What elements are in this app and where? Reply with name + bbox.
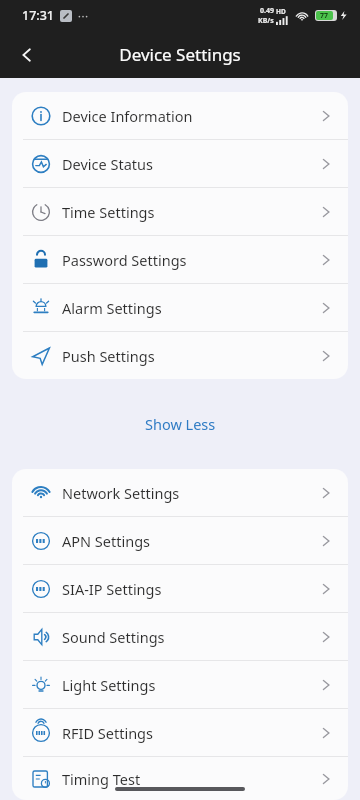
button[interactable]: RFID Settings bbox=[12, 709, 348, 756]
button[interactable]: Password Settings bbox=[12, 236, 348, 283]
staticText: Device Status bbox=[62, 154, 318, 174]
staticText: 77 bbox=[320, 11, 329, 20]
staticText: 17:31 bbox=[22, 7, 55, 24]
button[interactable]: Network Settings bbox=[12, 469, 348, 516]
button[interactable]: APN Settings bbox=[12, 517, 348, 564]
staticText: Light Settings bbox=[62, 675, 318, 695]
button[interactable]: Device Information bbox=[12, 92, 348, 139]
staticText: Password Settings bbox=[62, 250, 318, 270]
staticText: Show Less bbox=[145, 414, 216, 434]
button[interactable]: Time Settings bbox=[12, 188, 348, 235]
staticText: Alarm Settings bbox=[62, 298, 318, 318]
staticText: RFID Settings bbox=[62, 723, 318, 743]
staticText: Network Settings bbox=[62, 483, 318, 503]
button[interactable]: SIA-IP Settings bbox=[12, 565, 348, 612]
button[interactable]: Alarm Settings bbox=[12, 284, 348, 331]
button[interactable]: Device Status bbox=[12, 140, 348, 187]
staticText: APN Settings bbox=[62, 531, 318, 551]
staticText: HD bbox=[276, 7, 286, 16]
staticText: Device Settings bbox=[119, 43, 241, 66]
staticText: Time Settings bbox=[62, 202, 318, 222]
button[interactable]: Light Settings bbox=[12, 661, 348, 708]
button[interactable]: Timing Test bbox=[12, 757, 348, 800]
button[interactable]: Back bbox=[6, 34, 48, 76]
staticText: Sound Settings bbox=[62, 627, 318, 647]
staticText: Push Settings bbox=[62, 346, 318, 366]
staticText: SIA-IP Settings bbox=[62, 579, 318, 599]
button[interactable]: Push Settings bbox=[12, 332, 348, 379]
button[interactable]: Show Less bbox=[133, 408, 228, 440]
staticText: KB/s bbox=[258, 16, 274, 26]
button[interactable]: Sound Settings bbox=[12, 613, 348, 660]
staticText: Device Information bbox=[62, 106, 318, 126]
staticText: 0.49 bbox=[260, 6, 274, 16]
staticText: Timing Test bbox=[62, 769, 318, 789]
